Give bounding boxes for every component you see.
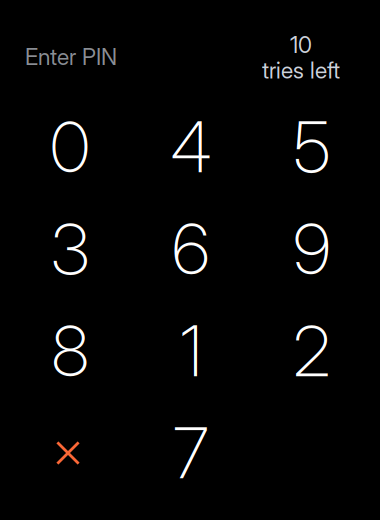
staticText: 7 xyxy=(173,411,209,495)
button[interactable]: 5 xyxy=(251,96,372,198)
staticText: 9 xyxy=(293,207,331,291)
staticText: 3 xyxy=(51,207,89,291)
staticText: 1 xyxy=(180,309,202,393)
staticText: 4 xyxy=(170,105,211,189)
staticText: 8 xyxy=(51,309,88,393)
button[interactable]: 8 xyxy=(9,300,130,402)
staticText: 2 xyxy=(293,309,331,393)
button[interactable]: 2 xyxy=(251,300,372,402)
staticText: 10 xyxy=(290,31,312,58)
staticText: 6 xyxy=(172,207,210,291)
button[interactable]: 4 xyxy=(130,96,251,198)
button[interactable]: 9 xyxy=(251,198,372,300)
staticText: Enter PIN xyxy=(25,43,117,70)
button[interactable]: 6 xyxy=(130,198,251,300)
staticText: 5 xyxy=(293,105,330,189)
button[interactable]: Clear xyxy=(9,402,130,504)
staticText: tries left xyxy=(262,56,340,84)
button[interactable]: 7 xyxy=(130,402,251,504)
button[interactable]: 0 xyxy=(9,96,130,198)
staticText: 0 xyxy=(50,105,90,189)
button[interactable]: 3 xyxy=(9,198,130,300)
button[interactable]: 1 xyxy=(130,300,251,402)
